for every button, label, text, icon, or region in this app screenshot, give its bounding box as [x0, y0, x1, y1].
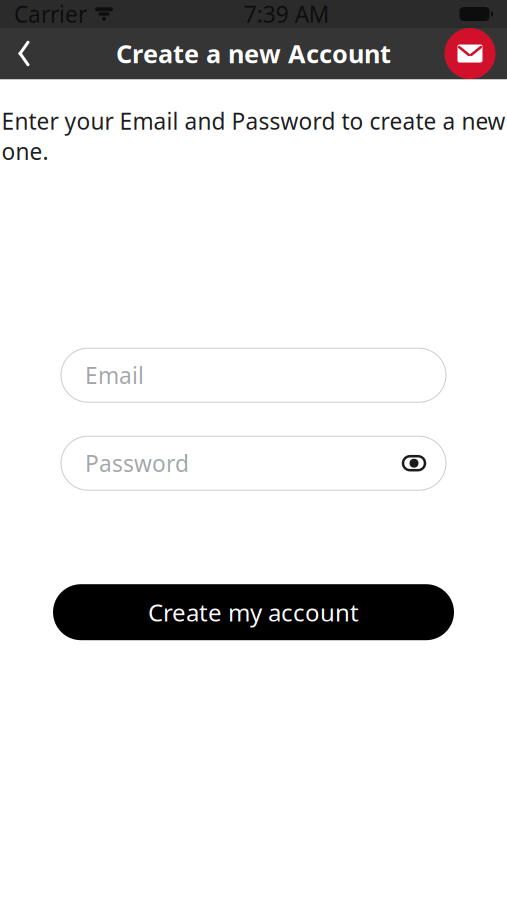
- button[interactable]: Email: [61, 348, 446, 402]
- button[interactable]: Back: [0, 27, 48, 79]
- staticText: Create my account: [148, 596, 359, 628]
- staticText: Enter your Email and Password to create …: [1, 106, 505, 166]
- staticText: Carrier: [14, 0, 87, 29]
- staticText: Email: [85, 360, 144, 390]
- button[interactable]: Create my account: [53, 584, 454, 640]
- staticText: Create a new Account: [116, 37, 391, 70]
- button[interactable]: Mail: [441, 24, 499, 82]
- button[interactable]: Password: [61, 436, 446, 490]
- staticText: 7:39 AM: [244, 0, 330, 29]
- staticText: Password: [85, 448, 189, 478]
